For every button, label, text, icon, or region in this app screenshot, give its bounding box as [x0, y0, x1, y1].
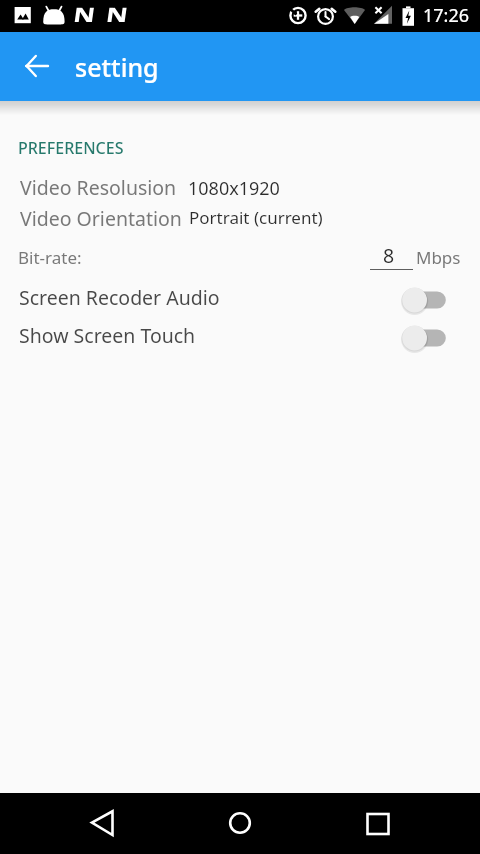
- button[interactable]: Screen Recoder Audio: [0, 276, 480, 313]
- staticText: Video Orientation: [20, 205, 182, 232]
- staticText: setting: [75, 50, 159, 84]
- staticText: 17:26: [423, 3, 470, 28]
- button[interactable]: Show Screen Touch: [0, 314, 480, 351]
- button[interactable]: Navigate up: [14, 44, 58, 88]
- staticText: Show Screen Touch: [19, 322, 196, 349]
- staticText: Video Resolusion: [20, 174, 177, 201]
- staticText: Screen Recoder Audio: [19, 284, 220, 311]
- button[interactable]: Bit-rate value: [368, 238, 415, 272]
- button[interactable]: Video Orientation: [0, 200, 480, 231]
- button[interactable]: Home: [216, 799, 264, 847]
- staticText: Bit-rate:: [18, 246, 82, 269]
- button[interactable]: Video Resolusion: [0, 169, 480, 200]
- staticText: Mbps: [416, 246, 461, 269]
- staticText: PREFERENCES: [18, 137, 124, 159]
- button[interactable]: Recent apps: [354, 799, 402, 847]
- staticText: 8: [383, 242, 395, 269]
- staticText: Portrait (current): [189, 206, 323, 229]
- button[interactable]: Back: [78, 799, 126, 847]
- staticText: 1080x1920: [188, 176, 280, 201]
